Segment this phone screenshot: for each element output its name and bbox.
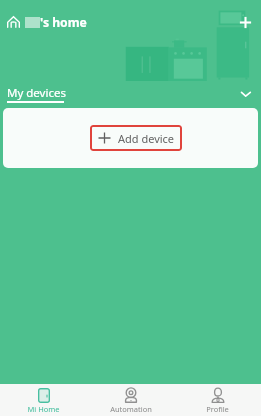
staticText: Add device [118,131,175,146]
staticText: 's home [40,14,87,31]
button[interactable]: 's home [7,14,87,31]
staticText: Profile [206,404,229,414]
button[interactable]: Automation [87,384,174,416]
button[interactable]: Expand device list [236,85,256,105]
button[interactable]: Mi Home [0,384,87,416]
staticText: Mi Home [27,404,60,414]
button[interactable]: Add device [237,14,254,31]
staticText: My devices [7,85,66,101]
button[interactable]: Add device [90,125,182,151]
button[interactable]: My devices [7,85,66,103]
button[interactable]: Profile [174,384,261,416]
staticText: Automation [110,404,152,414]
